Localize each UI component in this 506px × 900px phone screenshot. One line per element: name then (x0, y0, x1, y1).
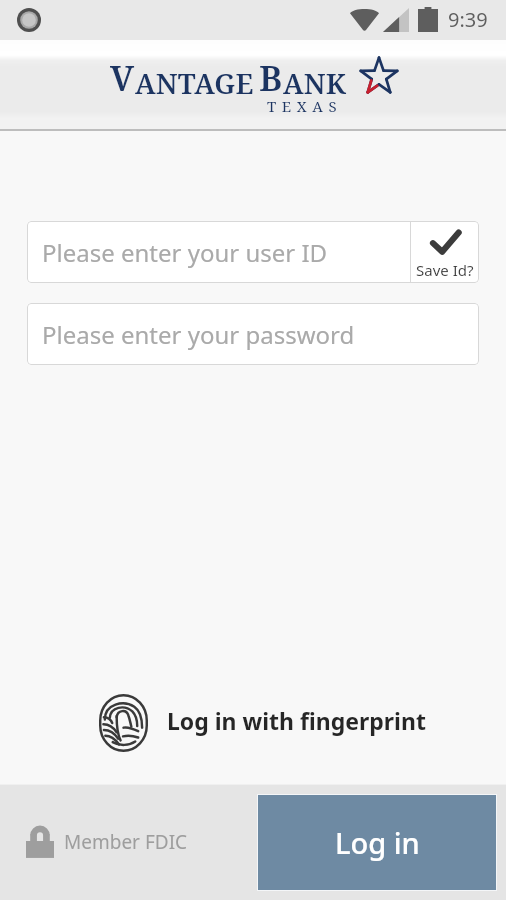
staticText: V (110, 54, 135, 102)
staticText: 9:39 (448, 6, 488, 33)
button[interactable]: Member FDIC (26, 814, 188, 870)
staticText: ANK (283, 64, 347, 102)
staticText: Log in with fingerprint (167, 705, 426, 736)
staticText: Log in (335, 823, 420, 862)
staticText: Please enter your password (42, 318, 355, 351)
staticText: Save Id? (416, 260, 474, 280)
staticText: TEXAS (267, 96, 343, 116)
staticText: ANTAGE (135, 64, 254, 102)
staticText: B (259, 54, 283, 102)
button[interactable]: Save Id? (411, 221, 479, 283)
button[interactable]: Please enter your user ID (27, 221, 410, 283)
staticText: Please enter your user ID (42, 236, 328, 269)
button[interactable]: Please enter your password (27, 303, 479, 365)
button[interactable]: Log in (258, 795, 496, 890)
staticText: Member FDIC (64, 829, 188, 855)
button[interactable]: Log in with fingerprint (97, 689, 457, 749)
other: Notification (17, 8, 41, 32)
